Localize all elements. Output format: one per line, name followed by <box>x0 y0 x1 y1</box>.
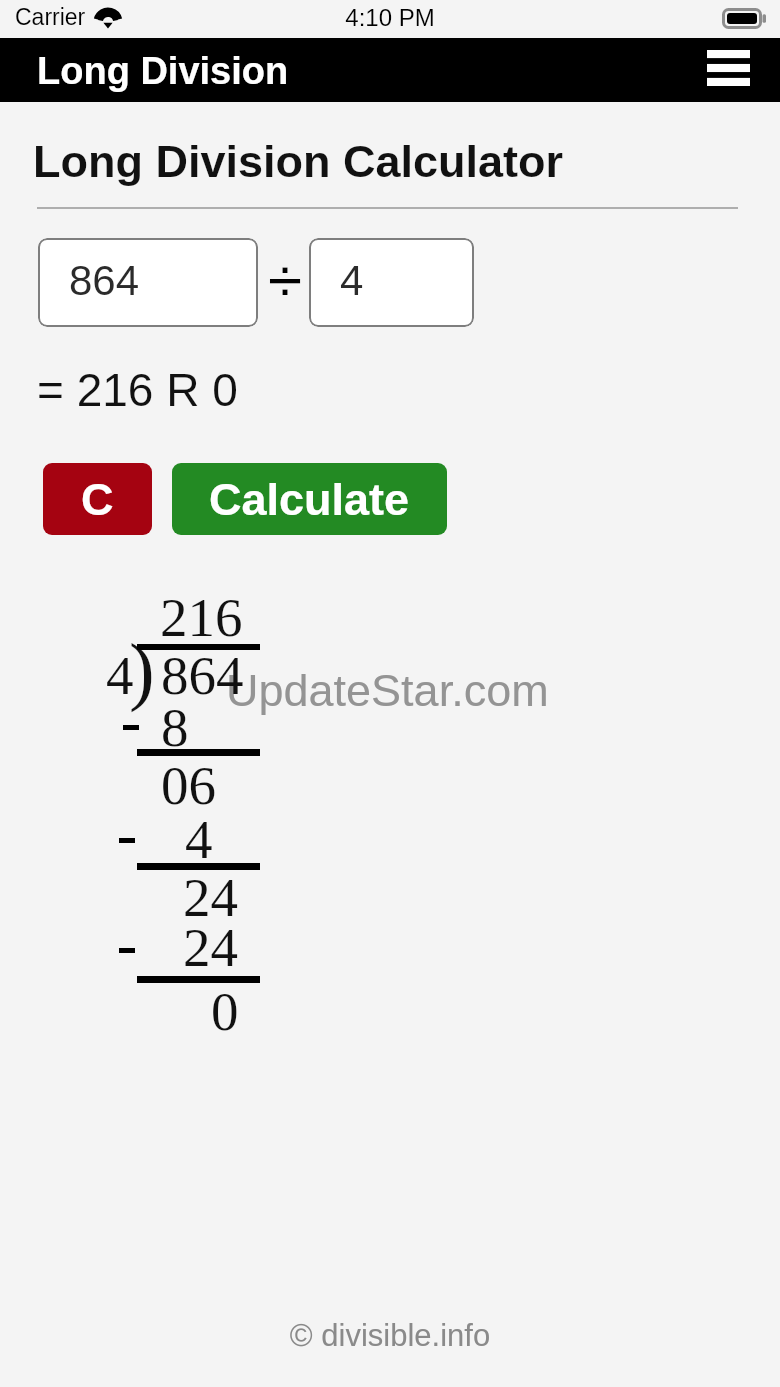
staticText: 06 <box>161 755 216 816</box>
staticText: 24 <box>183 917 238 978</box>
staticText: UpdateStar.com <box>226 665 549 715</box>
staticText: © divisible.info <box>0 1318 780 1353</box>
button[interactable]: Calculate <box>172 463 447 535</box>
staticText: 4 <box>340 257 364 304</box>
staticText: C <box>81 474 114 524</box>
button[interactable]: 864 <box>38 238 258 327</box>
staticText: Long Division Calculator <box>33 136 564 186</box>
staticText: 4:10 PM <box>0 4 780 31</box>
staticText: ÷ <box>268 246 303 315</box>
staticText: 4 <box>185 809 213 870</box>
button[interactable]: Open menu <box>700 40 756 96</box>
staticText: 0 <box>211 981 239 1042</box>
staticText: ) <box>129 627 155 712</box>
staticText: 8 <box>161 697 189 758</box>
staticText: Carrier <box>15 4 86 30</box>
staticText: 4 <box>106 645 134 706</box>
button[interactable]: 4 <box>309 238 474 327</box>
staticText: 864 <box>69 257 140 304</box>
staticText: 216 <box>160 587 243 648</box>
staticText: Long Division <box>37 50 289 92</box>
staticText: Calculate <box>209 474 410 524</box>
staticText: 24 <box>183 867 238 928</box>
staticText: = 216 R 0 <box>37 364 238 415</box>
button[interactable]: C <box>43 463 152 535</box>
staticText: 864 <box>161 645 244 706</box>
